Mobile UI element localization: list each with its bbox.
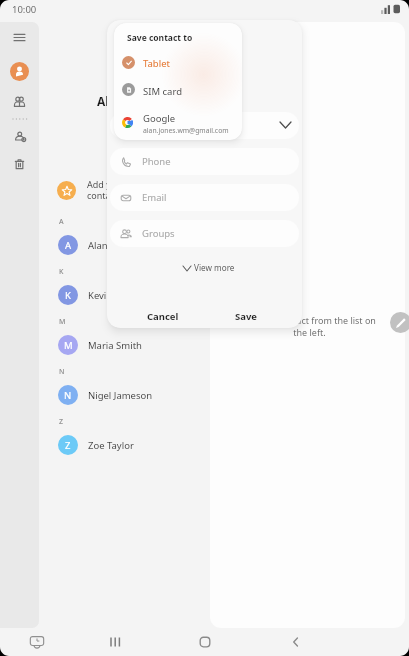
button[interactable]: Groups (110, 220, 299, 247)
button[interactable]: Tablet (114, 52, 242, 74)
staticText: Z (59, 417, 64, 427)
staticText: Maria Smith (88, 339, 142, 352)
button[interactable]: Groups (9, 95, 30, 112)
staticText: N (64, 389, 72, 402)
staticText: Save (235, 310, 258, 323)
button[interactable]: Email (110, 184, 299, 211)
staticText: View more (194, 262, 235, 273)
button[interactable]: Trash (9, 155, 30, 176)
staticText: Zoe Taylor (88, 439, 134, 452)
staticText: SIM card (143, 85, 182, 98)
staticText: Add your contact info (87, 178, 137, 202)
button[interactable] (110, 112, 299, 139)
staticText: M (59, 317, 66, 327)
staticText: Tablet (143, 57, 170, 70)
staticText: Phone (142, 155, 171, 168)
staticText: Kevin Smith (88, 289, 141, 302)
staticText: 10:00 (12, 3, 37, 16)
staticText: A (59, 217, 64, 227)
button[interactable]: Back (290, 636, 302, 648)
staticText: Alan Jones (88, 239, 135, 252)
button[interactable]: Google (114, 107, 242, 137)
button[interactable]: Edit (390, 312, 409, 333)
staticText: A (65, 239, 72, 252)
button[interactable]: N (39, 377, 210, 409)
staticText: M (64, 339, 73, 352)
button[interactable]: Phone (110, 148, 299, 175)
button[interactable]: View more (175, 258, 235, 276)
button[interactable]: Manage contacts (9, 127, 30, 148)
button[interactable]: Contacts (10, 62, 29, 81)
button[interactable]: Hide keyboard (28, 634, 46, 650)
staticText: K (65, 289, 71, 302)
button[interactable]: Add your contact info (39, 176, 210, 206)
button[interactable]: Z (39, 427, 210, 459)
button[interactable]: Recents (109, 636, 121, 648)
button[interactable]: Cancel (130, 305, 196, 327)
button[interactable]: SIM card (114, 79, 242, 101)
staticText: alan.jones.wm@gmail.com (143, 126, 229, 135)
staticText: Z (65, 439, 71, 452)
staticText: All (97, 93, 113, 109)
button[interactable]: M (39, 327, 210, 359)
button[interactable]: A (39, 227, 210, 259)
staticText: Select a contact from the list on the le… (242, 314, 377, 338)
staticText: Email (142, 191, 167, 204)
staticText: Save contact to (127, 32, 193, 44)
staticText: Groups (142, 227, 175, 240)
staticText: Google (143, 112, 176, 125)
button[interactable]: Save (213, 305, 279, 327)
button[interactable]: Menu (9, 27, 30, 48)
staticText: Nigel Jameson (88, 389, 153, 402)
button[interactable]: K (39, 277, 210, 309)
button[interactable]: Home (199, 636, 211, 648)
staticText: N (59, 367, 65, 377)
staticText: Cancel (147, 310, 179, 323)
staticText: K (59, 267, 64, 277)
